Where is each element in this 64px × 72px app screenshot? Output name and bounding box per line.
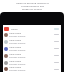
button[interactable]: Label name (3, 52, 61, 59)
button[interactable]: Label name (3, 38, 61, 45)
staticText: Label name (9, 60, 21, 63)
staticText: message preview (9, 42, 26, 45)
button[interactable]: Label name (3, 31, 61, 38)
staticText: Label name (9, 46, 21, 49)
staticText: Label name (9, 53, 21, 56)
staticText: message preview (9, 35, 26, 38)
button[interactable]: Label name (3, 66, 61, 72)
staticText: Gmail (11, 27, 18, 30)
staticText: message preview (9, 56, 26, 59)
staticText: curated insights and (21, 4, 44, 7)
button[interactable]: App logo (3, 26, 61, 31)
staticText: message preview (9, 69, 26, 72)
staticText: message preview (9, 49, 26, 52)
button[interactable]: Label name (3, 59, 61, 66)
button[interactable]: Label name (3, 45, 61, 52)
staticText: Label name (9, 32, 21, 35)
staticText: message preview (9, 63, 26, 66)
staticText: Label name (9, 39, 21, 42)
staticText: Ramp an evolving timeline of (16, 1, 49, 4)
staticText: Label name (9, 66, 21, 69)
staticText: guides for brands (22, 7, 42, 10)
